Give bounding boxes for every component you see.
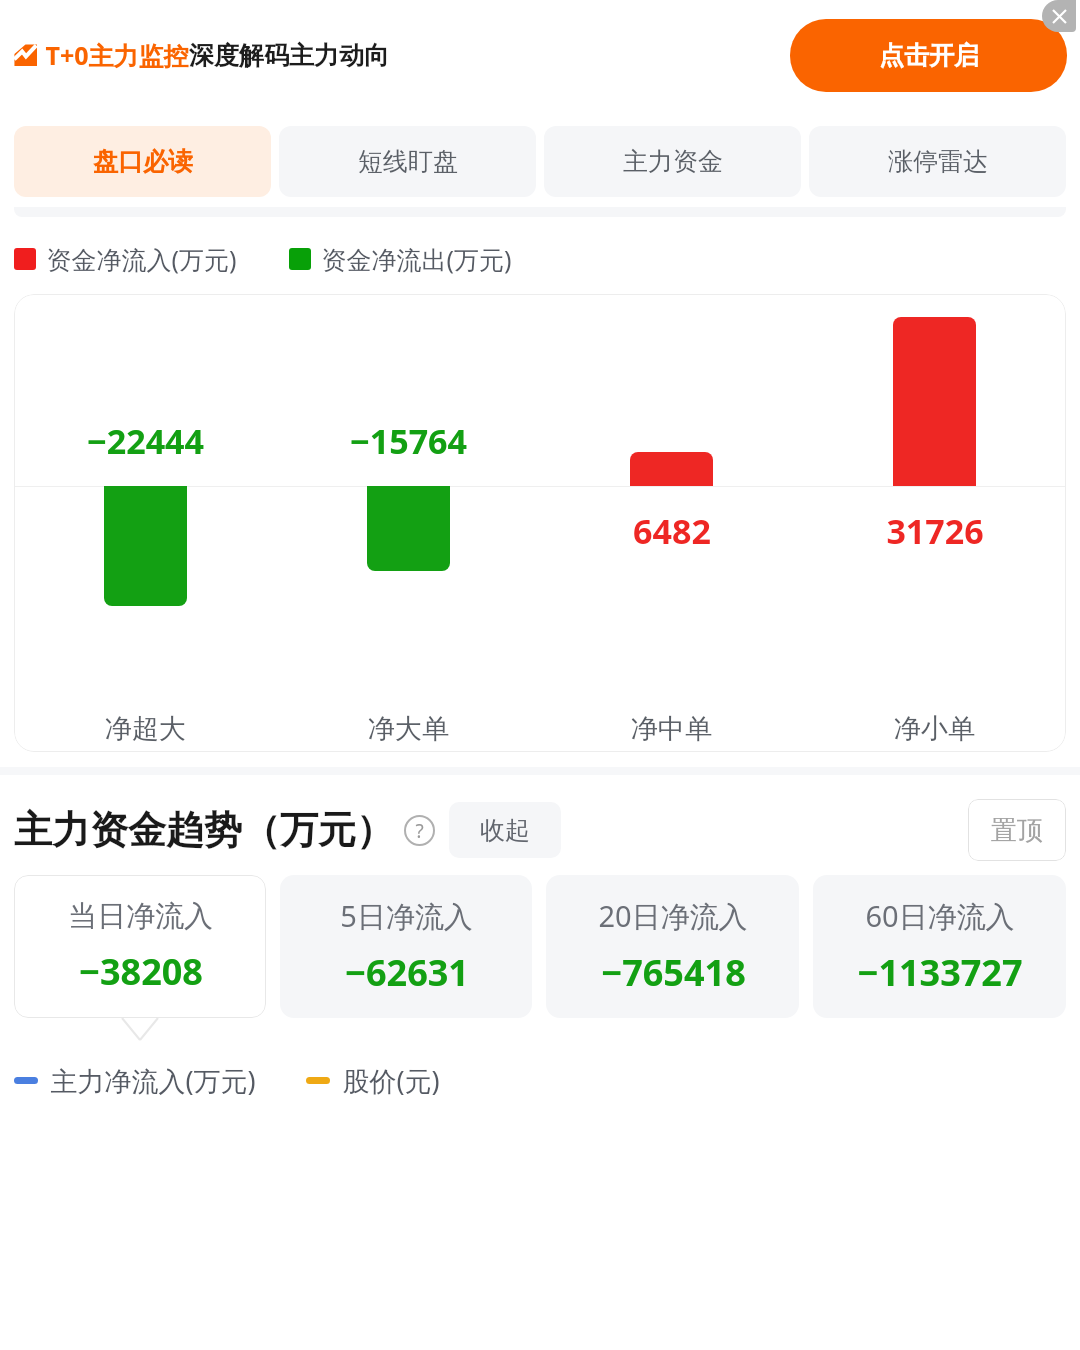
staticText: 主力净流入(万元)	[50, 1062, 256, 1099]
button[interactable]: Close	[1042, 0, 1076, 32]
staticText: 收起	[480, 815, 530, 846]
button[interactable]: Help	[404, 815, 435, 846]
staticText: −38208	[79, 947, 203, 996]
staticText: 深度解码主力动向	[189, 40, 389, 71]
button[interactable]: 主力资金	[544, 126, 801, 197]
staticText: 净中单	[631, 712, 712, 746]
staticText: ?	[415, 818, 424, 844]
staticText: 主力资金趋势（万元）	[14, 806, 394, 854]
button[interactable]: 涨停雷达	[809, 126, 1066, 197]
button[interactable]: 60日净流入	[813, 875, 1066, 1040]
staticText: −765418	[601, 948, 746, 997]
button[interactable]: 点击开启	[790, 19, 1067, 92]
staticText: 20日净流入	[598, 896, 748, 936]
staticText: T+0主力监控	[45, 38, 189, 72]
staticText: 当日净流入	[68, 898, 213, 935]
button[interactable]: 短线盯盘	[279, 126, 536, 197]
staticText: 净超大	[105, 712, 186, 746]
staticText: 60日净流入	[865, 896, 1015, 936]
button[interactable]: 5日净流入	[280, 875, 532, 1040]
staticText: −15764	[350, 418, 467, 464]
staticText: 主力资金	[623, 146, 723, 177]
staticText: 资金净流入(万元)	[46, 242, 237, 276]
staticText: 置顶	[991, 814, 1043, 847]
button[interactable]: 20日净流入	[546, 875, 799, 1040]
staticText: 点击开启	[879, 40, 979, 71]
staticText: −22444	[87, 418, 204, 464]
button[interactable]: 置顶	[968, 799, 1066, 861]
staticText: 盘口必读	[93, 146, 193, 177]
staticText: 资金净流出(万元)	[321, 242, 512, 276]
staticText: 31726	[886, 508, 984, 554]
staticText: 短线盯盘	[358, 146, 458, 177]
staticText: −62631	[345, 948, 469, 997]
staticText: 涨停雷达	[888, 146, 988, 177]
staticText: 5日净流入	[340, 896, 473, 936]
staticText: 净大单	[368, 712, 449, 746]
button[interactable]: 当日净流入	[14, 875, 266, 1040]
staticText: −1133727	[857, 948, 1023, 997]
button[interactable]: 盘口必读	[14, 126, 271, 197]
button[interactable]: 收起	[449, 802, 561, 858]
staticText: 净小单	[894, 712, 975, 746]
staticText: 股价(元)	[342, 1062, 440, 1099]
staticText: 6482	[633, 508, 711, 554]
